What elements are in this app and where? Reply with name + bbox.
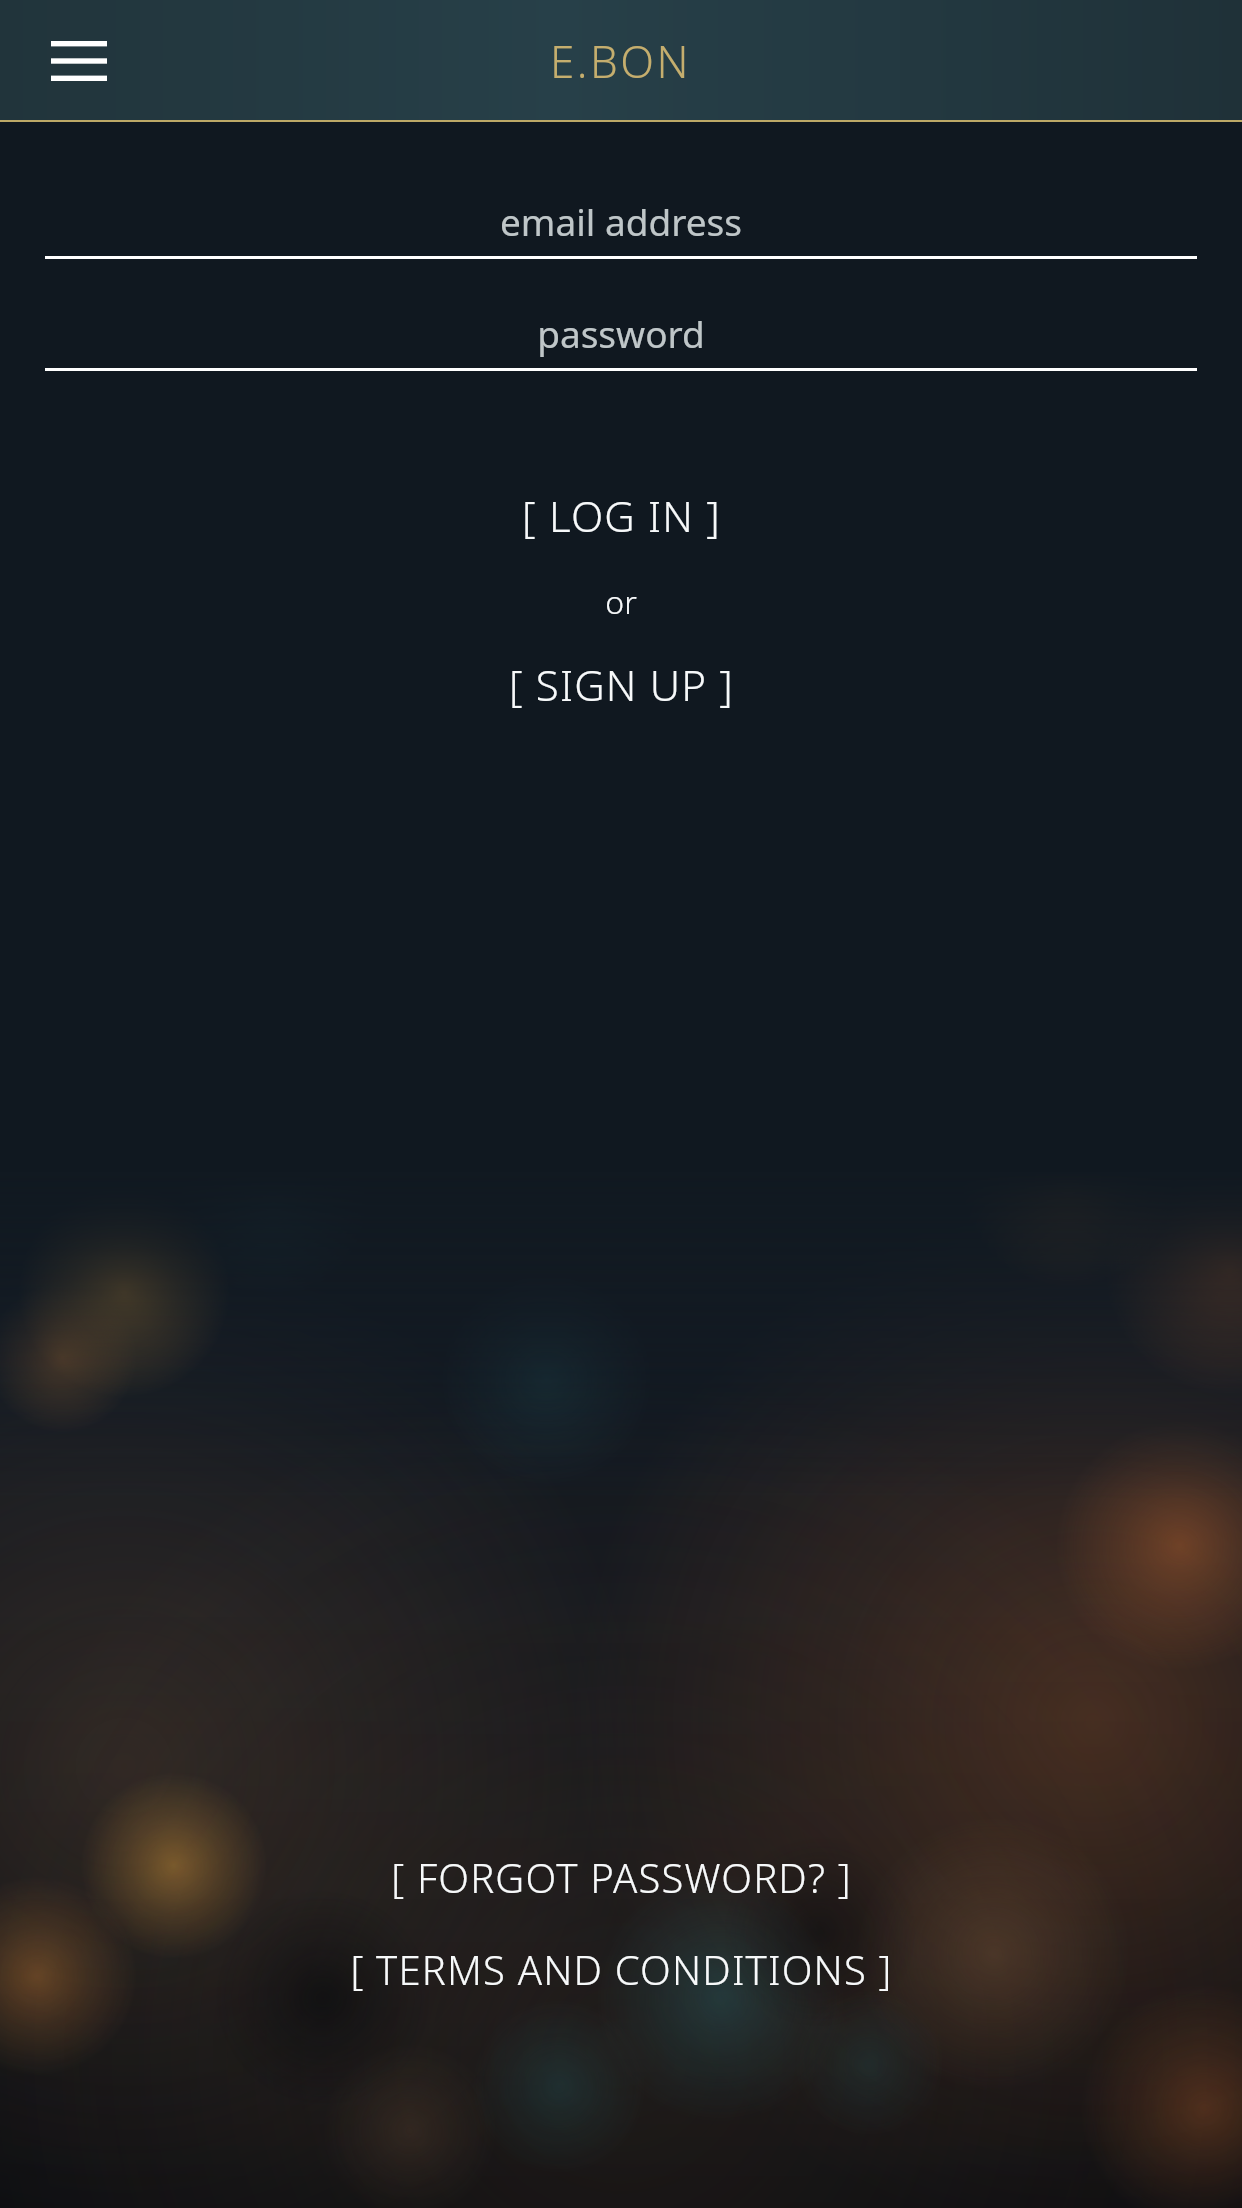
staticText: [ TERMS AND CONDITIONS ] bbox=[350, 1942, 893, 1996]
staticText: E.BON bbox=[550, 31, 692, 91]
button[interactable]: email address bbox=[45, 196, 1197, 259]
button[interactable]: [ TERMS AND CONDITIONS ] bbox=[0, 1936, 1242, 2002]
staticText: email address bbox=[45, 196, 1197, 246]
staticText: [ FORGOT PASSWORD? ] bbox=[391, 1850, 852, 1904]
staticText: [ LOG IN ] bbox=[522, 487, 721, 544]
staticText: [ SIGN UP ] bbox=[509, 656, 734, 713]
staticText: or bbox=[0, 580, 1242, 624]
button[interactable]: password bbox=[45, 308, 1197, 371]
button[interactable]: [ LOG IN ] bbox=[0, 481, 1242, 550]
button[interactable]: [ SIGN UP ] bbox=[0, 650, 1242, 719]
button[interactable]: [ FORGOT PASSWORD? ] bbox=[0, 1844, 1242, 1910]
button[interactable]: Open navigation menu bbox=[40, 25, 118, 97]
staticText: password bbox=[45, 308, 1197, 358]
